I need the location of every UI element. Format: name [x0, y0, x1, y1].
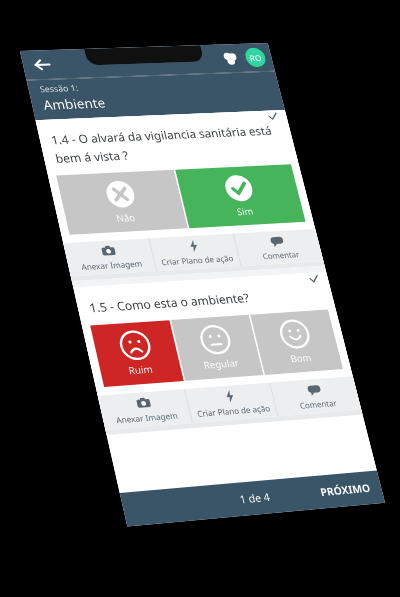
staticText: Bom [289, 351, 313, 365]
button[interactable]: Anexar Imagem [63, 238, 156, 276]
button[interactable]: Anexar Imagem [98, 389, 192, 430]
button[interactable]: Comentar [270, 376, 361, 416]
staticText: 1.5 - Como esta o ambiente? [88, 289, 251, 316]
button[interactable]: Dice [217, 48, 244, 69]
staticText: RO [248, 52, 263, 63]
button[interactable]: Back [25, 51, 60, 79]
staticText: Comentar [298, 397, 338, 411]
staticText: PRÓXIMO [319, 480, 372, 499]
button[interactable]: Ruim [90, 320, 184, 387]
button[interactable]: Sim [175, 164, 306, 228]
button[interactable]: Regular [171, 315, 263, 381]
staticText: Não [115, 211, 137, 224]
staticText: Ruim [127, 362, 154, 377]
staticText: Regular [202, 356, 240, 371]
button[interactable]: Criar Plano de ação [185, 383, 277, 423]
button[interactable]: Criar Plano de ação [149, 234, 241, 271]
staticText: Criar Plano de ação [196, 402, 271, 419]
staticText: Ambiente [41, 94, 107, 114]
button[interactable]: PRÓXIMO [319, 480, 372, 499]
staticText: Comentar [261, 249, 300, 262]
staticText: Sessão 1: [38, 82, 79, 95]
staticText: Anexar Imagem [80, 258, 144, 272]
staticText: Criar Plano de ação [160, 252, 234, 268]
button[interactable]: Comentar [233, 229, 323, 266]
staticText: Sim [235, 204, 254, 218]
button[interactable]: RO [243, 47, 268, 67]
staticText: 1 de 4 [238, 489, 271, 507]
staticText: 1.4 - O alvará da vigilancia sanitária e… [50, 123, 278, 166]
button[interactable]: Não [56, 170, 188, 235]
staticText: Anexar Imagem [114, 409, 179, 426]
button[interactable]: Bom [250, 309, 343, 375]
